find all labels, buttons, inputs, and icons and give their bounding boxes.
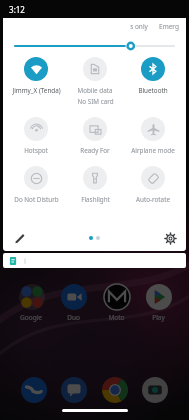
staticText: Ready For — [80, 146, 110, 155]
button[interactable]: Play — [139, 283, 177, 322]
button[interactable]: Chrome — [100, 375, 130, 405]
staticText: Play — [152, 313, 165, 322]
button[interactable]: Camera — [140, 375, 170, 405]
button[interactable]: Google — [12, 283, 50, 322]
button[interactable]: Edit tiles — [10, 229, 28, 247]
staticText: Moto — [108, 313, 125, 322]
staticText: Auto-rotate — [136, 195, 170, 204]
staticText: No SIM card — [77, 97, 114, 106]
button[interactable]: Ready For — [66, 117, 124, 155]
button[interactable]: Hotspot — [7, 117, 65, 155]
staticText: Mobile data — [77, 86, 113, 95]
button[interactable]: Home — [62, 409, 128, 412]
staticText: Jimmy_X (Tenda) — [12, 86, 61, 95]
button[interactable]: Bluetooth — [124, 57, 182, 95]
button[interactable]: Do Not Disturb — [7, 166, 65, 204]
button[interactable]: Duo — [54, 283, 92, 322]
button[interactable]: Flashlight — [66, 166, 124, 204]
button[interactable]: Settings — [161, 229, 179, 247]
button[interactable] — [3, 253, 186, 268]
button[interactable]: Jimmy_X (Tenda) — [7, 57, 65, 95]
staticText: Bluetooth — [138, 86, 168, 95]
button[interactable]: Moto — [97, 283, 135, 322]
staticText: Flashlight — [81, 195, 110, 204]
button[interactable]: Brightness — [14, 40, 175, 52]
staticText: Do Not Disturb — [14, 195, 59, 204]
staticText: Google — [20, 313, 42, 322]
staticText: s only — [130, 22, 148, 31]
button[interactable]: Emerg — [159, 22, 179, 31]
button[interactable]: Phone — [19, 375, 49, 405]
staticText: Duo — [67, 313, 80, 322]
button[interactable]: Auto-rotate — [124, 166, 182, 204]
staticText: Emerg — [159, 22, 179, 31]
button[interactable]: Mobile data — [66, 57, 124, 106]
button[interactable]: Messages — [59, 375, 89, 405]
button[interactable]: Airplane mode — [124, 117, 182, 155]
staticText: Hotspot — [24, 146, 48, 155]
staticText: 3:12 — [9, 4, 25, 15]
staticText: Airplane mode — [131, 146, 175, 155]
